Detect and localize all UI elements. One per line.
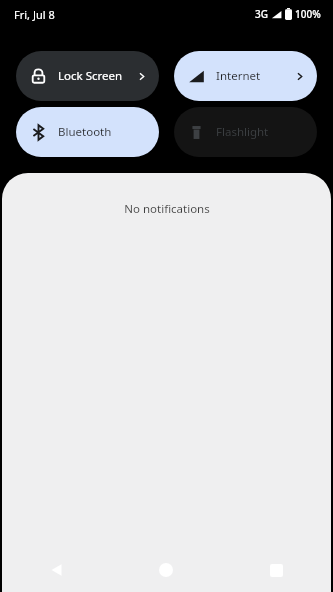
button[interactable]: Internet: [174, 51, 317, 101]
staticText: Fri, Jul 8: [14, 7, 55, 22]
button[interactable]: Lock Screen: [16, 51, 159, 101]
staticText: 3G: [255, 7, 268, 21]
staticText: Internet: [216, 68, 294, 84]
button[interactable]: Flashlight: [174, 107, 317, 157]
staticText: Flashlight: [216, 124, 305, 140]
staticText: Lock Screen: [58, 68, 136, 84]
button[interactable]: Bluetooth: [16, 107, 159, 157]
staticText: 100%: [295, 7, 321, 21]
staticText: No notifications: [124, 201, 210, 217]
staticText: Bluetooth: [58, 124, 147, 140]
